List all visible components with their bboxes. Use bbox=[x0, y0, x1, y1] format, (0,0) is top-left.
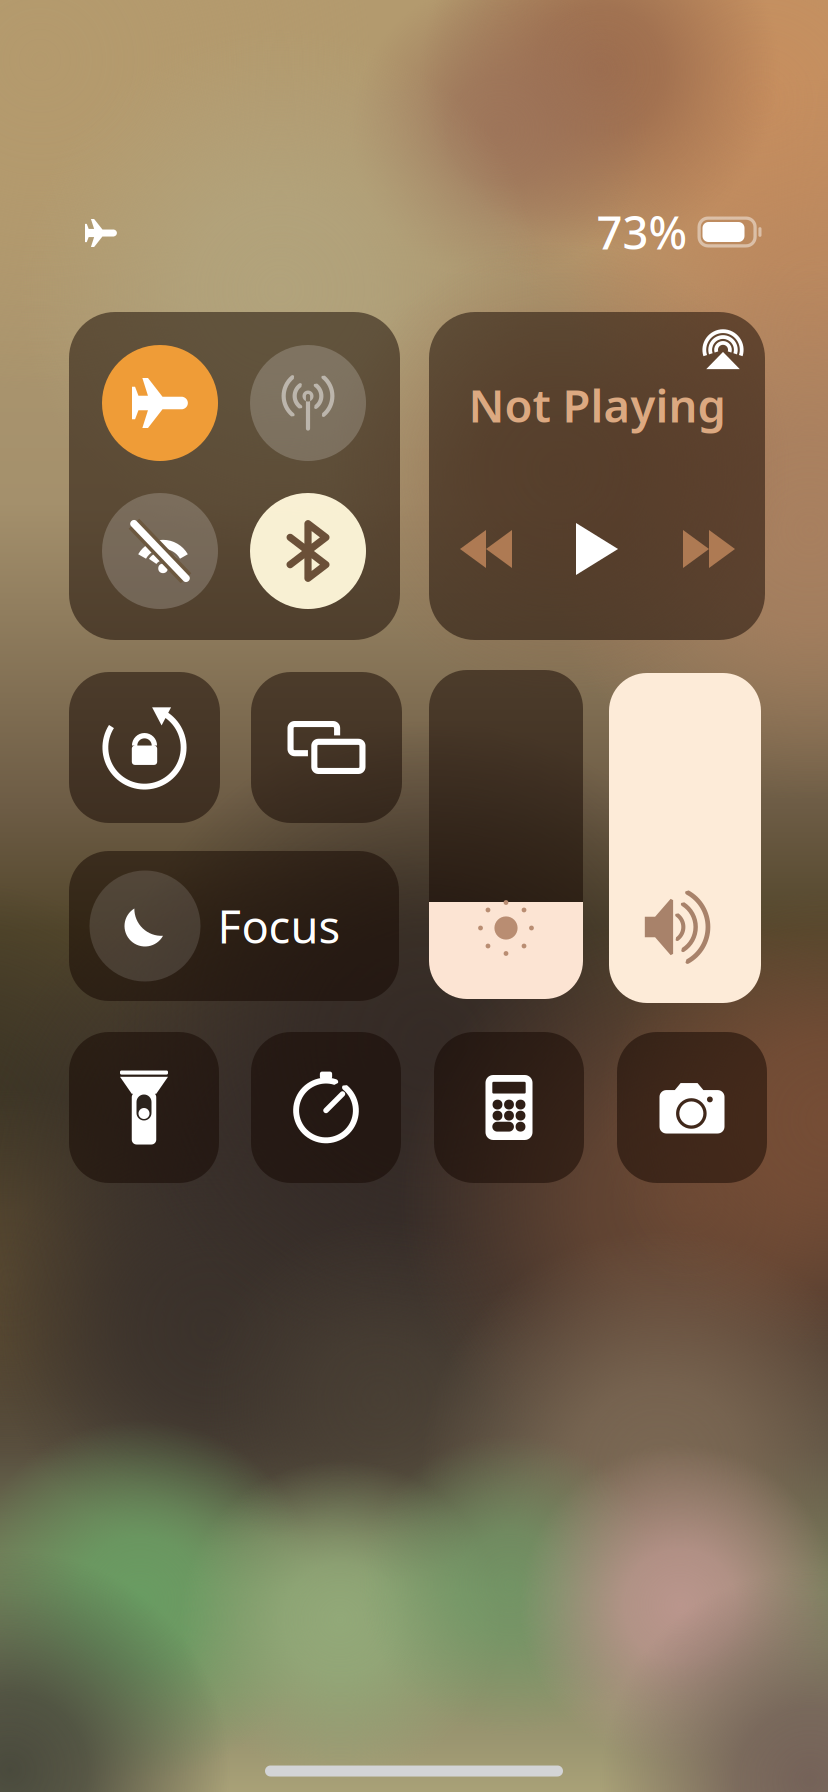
button[interactable]: Flashlight bbox=[69, 1032, 219, 1183]
button[interactable]: Volume bbox=[609, 673, 761, 1003]
button[interactable]: Camera bbox=[617, 1032, 767, 1183]
button[interactable]: Brightness bbox=[429, 670, 583, 999]
staticText: 73% bbox=[596, 202, 687, 262]
button[interactable]: Focus bbox=[69, 851, 399, 1001]
button[interactable]: Airplane Mode bbox=[73, 205, 129, 261]
button[interactable]: Airplane Mode bbox=[102, 345, 218, 461]
button[interactable]: Play bbox=[554, 506, 640, 592]
button[interactable]: Bluetooth bbox=[250, 493, 366, 609]
button[interactable]: Rewind bbox=[443, 506, 529, 592]
button[interactable]: Portrait Orientation Lock bbox=[69, 672, 220, 823]
staticText: Not Playing bbox=[468, 375, 725, 435]
button[interactable]: Timer bbox=[251, 1032, 401, 1183]
button[interactable]: Wi‑Fi bbox=[102, 493, 218, 609]
button[interactable]: Cellular Data bbox=[250, 345, 366, 461]
button[interactable]: Calculator bbox=[434, 1032, 584, 1183]
button[interactable]: AirPlay bbox=[692, 318, 754, 380]
staticText: Focus bbox=[217, 896, 340, 956]
button[interactable]: Fast Forward bbox=[666, 506, 752, 592]
button[interactable]: Screen Mirroring bbox=[251, 672, 402, 823]
